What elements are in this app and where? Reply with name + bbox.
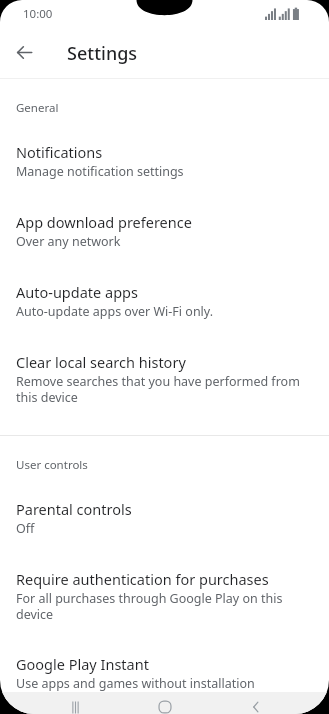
button[interactable]: Notifications [0, 142, 329, 180]
button[interactable]: App download preference [0, 212, 329, 250]
staticText: App download preference [16, 212, 192, 232]
button[interactable]: Back [238, 696, 274, 714]
staticText: General [16, 100, 59, 116]
button[interactable]: Home [147, 696, 183, 714]
button[interactable]: Auto-update apps [0, 282, 329, 320]
staticText: Auto-update apps [16, 282, 138, 302]
button[interactable]: Parental controls [0, 499, 329, 537]
staticText: Off [16, 520, 35, 537]
staticText: Remove searches that you have performed … [16, 373, 313, 405]
staticText: Auto-update apps over Wi-Fi only. [16, 303, 214, 320]
button[interactable]: Clear local search history [0, 352, 329, 405]
staticText: Over any network [16, 233, 121, 250]
staticText: For all purchases through Google Play on… [16, 590, 313, 622]
staticText: Google Play Instant [16, 654, 149, 674]
staticText: 10:00 [23, 6, 53, 22]
button[interactable]: Recent apps [57, 696, 93, 714]
staticText: Parental controls [16, 499, 132, 519]
staticText: Require authentication for purchases [16, 569, 269, 589]
staticText: Clear local search history [16, 352, 186, 372]
staticText: Use apps and games without installation [16, 675, 255, 692]
staticText: Settings [67, 41, 138, 66]
staticText: Manage notification settings [16, 163, 184, 180]
button[interactable]: Google Play Instant [0, 654, 329, 692]
staticText: User controls [16, 457, 88, 473]
button[interactable]: Back [8, 36, 40, 68]
staticText: Notifications [16, 142, 103, 162]
button[interactable]: Require authentication for purchases [0, 569, 329, 622]
